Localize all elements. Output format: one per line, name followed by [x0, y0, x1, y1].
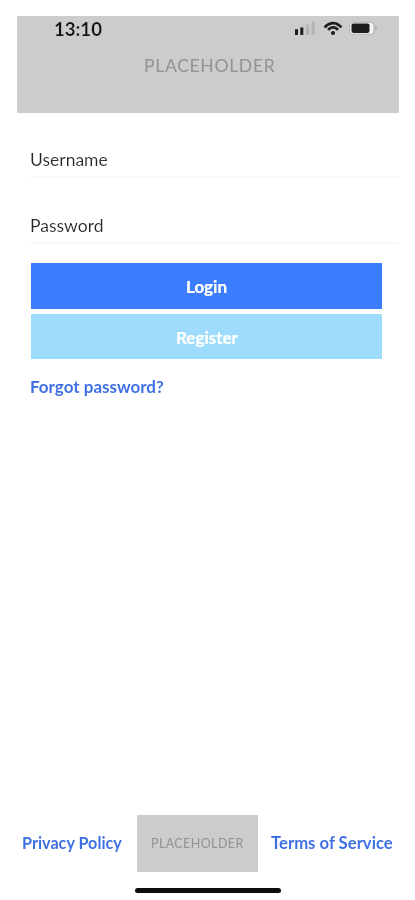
staticText: PLACEHOLDER [144, 55, 276, 76]
staticText: 13:10 [54, 18, 102, 40]
other: Signal, Wi-Fi and battery status [292, 16, 392, 46]
button[interactable]: Terms of Service [271, 829, 393, 857]
staticText: Privacy Policy [22, 833, 122, 852]
button[interactable]: Password [30, 210, 398, 244]
staticText: Username [30, 149, 108, 170]
staticText: Login [186, 276, 227, 296]
staticText: Password [30, 215, 104, 236]
button[interactable]: Login [31, 263, 382, 309]
button[interactable]: Forgot password? [30, 372, 164, 400]
button[interactable]: Privacy Policy [22, 829, 122, 856]
staticText: Terms of Service [271, 833, 393, 853]
staticText: PLACEHOLDER [151, 836, 244, 851]
button[interactable]: PLACEHOLDER [137, 815, 258, 872]
button[interactable]: Register [31, 314, 382, 359]
staticText: Register [176, 327, 238, 347]
button[interactable]: Username [30, 144, 398, 178]
staticText: Forgot password? [30, 376, 164, 396]
